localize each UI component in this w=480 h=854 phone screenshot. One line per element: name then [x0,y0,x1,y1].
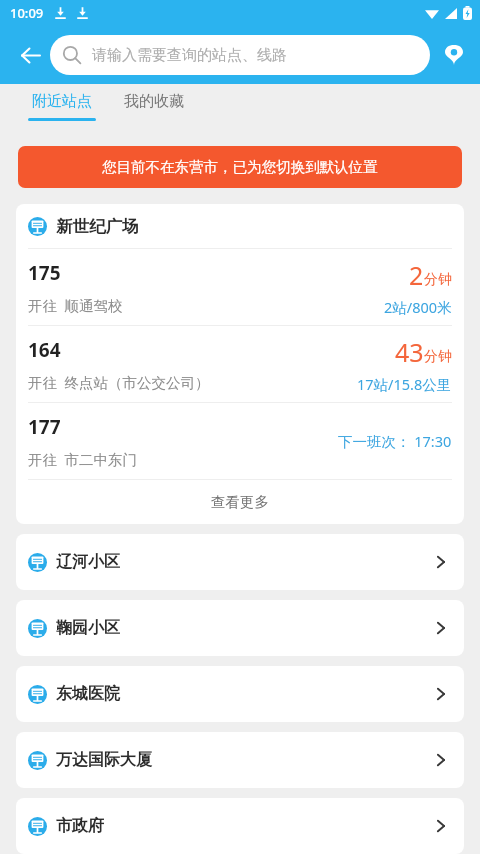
button[interactable]: 查看更多 [16,480,464,524]
staticText: 万达国际大厦 [56,750,152,770]
staticText: 分钟 [424,271,452,289]
staticText: 17站/15.8公里 [357,374,452,394]
staticText: 我的收藏 [124,92,184,111]
button[interactable]: 177 [16,403,464,479]
button[interactable]: 万达国际大厦 [16,732,464,788]
button[interactable]: 市政府 [16,798,464,854]
staticText: 新世纪广场 [56,216,139,237]
staticText: 177 [28,414,61,440]
staticText: 附近站点 [32,92,92,111]
button[interactable]: 我的收藏 [124,84,184,111]
button[interactable]: 鞠园小区 [16,600,464,656]
staticText: 鞠园小区 [56,618,120,638]
staticText: 请输入需要查询的站点、线路 [92,46,287,65]
staticText: 开往 市二中东门 [28,449,138,469]
staticText: 43 [395,335,424,369]
staticText: 开往 终点站（市公交公司） [28,372,210,392]
staticText: 开往 顺通驾校 [28,295,123,315]
staticText: 查看更多 [211,493,269,511]
staticText: 东城医院 [56,684,120,704]
staticText: 164 [28,337,61,363]
button[interactable]: Location [436,37,472,73]
staticText: 2 [409,258,424,292]
staticText: 下一班次： 17:30 [338,431,452,451]
button[interactable]: 您目前不在东营市，已为您切换到默认位置 [18,146,462,188]
button[interactable]: 新世纪广场 [16,204,464,248]
button[interactable]: 请输入需要查询的站点、线路 [50,35,430,75]
button[interactable]: 附近站点 [28,84,96,121]
staticText: 分钟 [424,348,452,366]
button[interactable]: 东城医院 [16,666,464,722]
staticText: 10:09 [10,4,44,22]
button[interactable]: Back [10,35,50,75]
button[interactable]: 辽河小区 [16,534,464,590]
staticText: 您目前不在东营市，已为您切换到默认位置 [102,158,378,176]
staticText: 2站/800米 [384,297,452,317]
button[interactable]: 175 [16,249,464,325]
staticText: 市政府 [56,816,104,836]
button[interactable]: 164 [16,326,464,402]
staticText: 175 [28,260,61,286]
staticText: 辽河小区 [56,552,120,572]
